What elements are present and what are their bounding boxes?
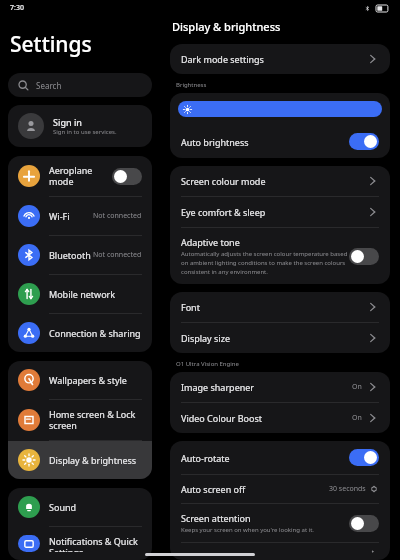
button[interactable]: Wi-Fi [8, 197, 152, 235]
staticText: Dark mode settings [181, 53, 264, 65]
button[interactable]: Auto-rotate [170, 441, 390, 474]
button[interactable]: Font [170, 292, 390, 322]
button[interactable] [178, 101, 382, 117]
staticText: O1 Ultra Vision Engine [176, 360, 239, 368]
staticText: Screen colour mode [181, 175, 266, 187]
staticText: Notifications & Quick Settings [49, 535, 142, 552]
staticText: Keeps your screen on when you're looking… [181, 526, 314, 534]
button[interactable]: Dark mode settings [170, 44, 390, 74]
staticText: Display size [181, 332, 230, 344]
button[interactable]: Eye comfort & sleep [170, 197, 390, 227]
staticText: Brightness [176, 81, 207, 89]
staticText: Not connected [93, 250, 142, 260]
staticText: Screen attention [181, 512, 251, 524]
staticText: Not connected [93, 211, 142, 221]
staticText: Mobile network [49, 288, 142, 300]
staticText: Auto screen off [181, 483, 246, 495]
button[interactable]: Auto screen off [170, 475, 390, 503]
staticText: Adaptive tone [181, 236, 240, 248]
staticText: Display & brightness [49, 454, 142, 466]
button[interactable]: Notifications & Quick Settings [8, 527, 152, 560]
staticText: Wallpapers & style [49, 374, 142, 386]
button[interactable]: Screen colour mode [170, 166, 390, 196]
button[interactable]: Display size [170, 323, 390, 353]
button[interactable] [349, 515, 379, 532]
staticText: Auto brightness [181, 136, 249, 148]
button[interactable]: Aeroplane mode [8, 156, 152, 196]
button[interactable]: Auto brightness [170, 125, 390, 158]
staticText: Video Colour Boost [181, 412, 262, 424]
button[interactable]: Display & brightness [8, 441, 152, 479]
staticText: Automatically adjusts the screen colour … [181, 250, 349, 276]
staticText: Aeroplane mode [49, 164, 112, 188]
staticText: On [352, 413, 362, 423]
button[interactable]: Adaptive tone [170, 228, 390, 284]
staticText: Font [181, 301, 200, 313]
button[interactable]: Mobile network [8, 275, 152, 313]
button[interactable]: Screen refresh rate [170, 543, 390, 560]
button[interactable] [349, 449, 379, 466]
staticText: 30 seconds [329, 484, 366, 494]
button[interactable] [349, 248, 379, 265]
staticText: Settings [10, 30, 92, 59]
button[interactable]: Sound [8, 488, 152, 526]
button[interactable]: Bluetooth [8, 236, 152, 274]
button[interactable]: Search [8, 73, 152, 97]
button[interactable]: Connection & sharing [8, 314, 152, 352]
button[interactable]: Sign in [8, 105, 152, 147]
button[interactable]: Image sharpener [170, 372, 390, 402]
staticText: Sound [49, 501, 142, 513]
button[interactable] [112, 168, 142, 185]
staticText: Bluetooth [49, 249, 93, 261]
button[interactable] [349, 133, 379, 150]
staticText: Sign in [53, 116, 83, 128]
button[interactable]: Screen attention [170, 504, 390, 542]
staticText: Wi-Fi [49, 210, 93, 222]
staticText: 7:30 [10, 3, 24, 13]
staticText: Image sharpener [181, 381, 255, 393]
button[interactable]: Wallpapers & style [8, 361, 152, 399]
staticText: Auto-rotate [181, 452, 230, 464]
staticText: Connection & sharing [49, 327, 142, 339]
staticText: On [352, 382, 362, 392]
staticText: Eye comfort & sleep [181, 206, 266, 218]
staticText: Sign in to use services. [53, 128, 117, 136]
staticText: Search [36, 80, 62, 91]
button[interactable]: Home screen & Lock screen [8, 400, 152, 440]
button[interactable]: Video Colour Boost [170, 403, 390, 433]
staticText: Display & brightness [172, 19, 281, 34]
staticText: Home screen & Lock screen [49, 408, 142, 432]
